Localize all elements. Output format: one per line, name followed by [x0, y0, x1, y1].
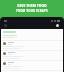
button[interactable]: [1, 61, 63, 71]
button[interactable]: [1, 41, 63, 51]
staticText: GIVE THEM FOOD: [17, 4, 47, 8]
button[interactable]: [1, 51, 63, 61]
staticText: FROM YOUR SCRAPS: [16, 9, 48, 13]
button[interactable]: Menu: [4, 24, 7, 27]
button[interactable]: Profile: [56, 24, 59, 27]
